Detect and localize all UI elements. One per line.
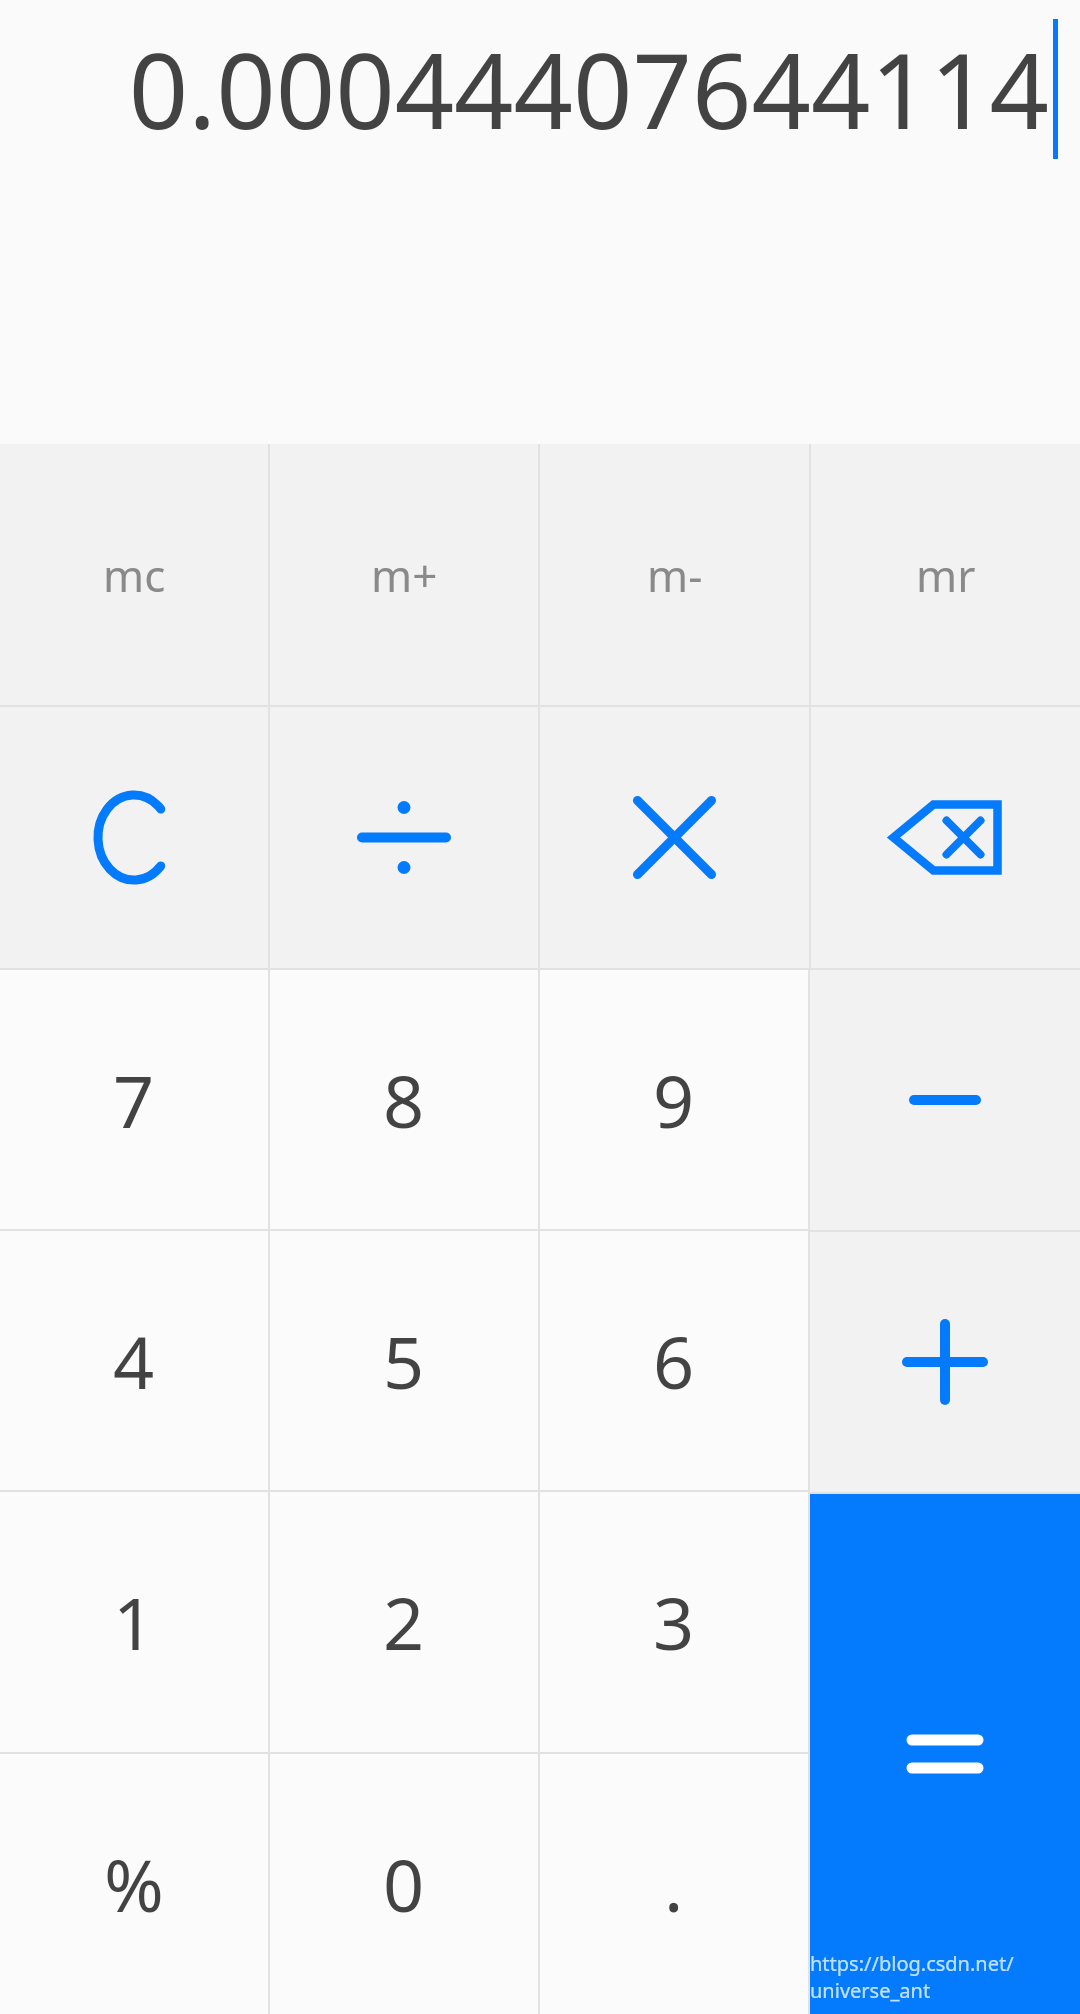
other: Equals [810,1494,1080,2014]
button[interactable]: Multiply [540,707,809,968]
button[interactable]: % [0,1754,268,2014]
staticText: mr [916,545,976,605]
button[interactable]: 9 [540,970,808,1229]
staticText: m- [647,545,703,605]
button[interactable]: Equals [810,1494,1080,2014]
button[interactable]: 1 [0,1492,268,1752]
staticText: 1 [113,1573,155,1671]
staticText: 5 [383,1312,425,1410]
button[interactable]: Backspace [811,707,1080,968]
button[interactable]: Clear [0,707,268,968]
button[interactable]: Divide [270,707,538,968]
staticText: 7 [113,1051,155,1149]
button[interactable]: m- [540,444,809,705]
staticText: https://blog.csdn.net/universe_ant [810,1950,1074,2004]
button[interactable]: mr [811,444,1080,705]
staticText: 8 [383,1051,425,1149]
button[interactable]: 5 [270,1231,538,1490]
staticText: % [104,1835,164,1933]
button[interactable]: Plus [810,1232,1080,1492]
button[interactable]: 2 [270,1492,538,1752]
button[interactable]: 0 [270,1754,538,2014]
staticText: . [664,1835,684,1933]
button[interactable]: 6 [540,1231,808,1490]
staticText: 4 [113,1312,155,1410]
button[interactable]: 7 [0,970,268,1229]
button[interactable]: 8 [270,970,538,1229]
button[interactable]: 3 [540,1492,808,1752]
staticText: 9 [653,1051,695,1149]
button[interactable]: mc [0,444,268,705]
button[interactable]: . [540,1754,808,2014]
staticText: 6 [653,1312,695,1410]
staticText: 3 [653,1573,695,1671]
staticText: m+ [371,545,438,605]
button[interactable]: m+ [270,444,538,705]
staticText: 0.00044407644114 [128,18,1049,160]
staticText: 2 [383,1573,425,1671]
button[interactable]: Minus [810,970,1080,1230]
staticText: mc [103,545,166,605]
staticText: 0 [383,1835,425,1933]
button[interactable]: 4 [0,1231,268,1490]
